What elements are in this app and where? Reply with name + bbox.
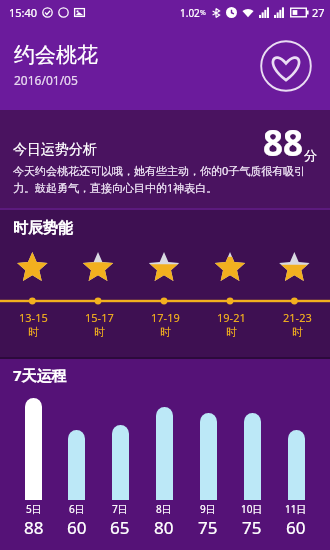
staticText: 7日 bbox=[112, 502, 128, 516]
staticText: 时 bbox=[226, 325, 237, 339]
staticText: 时 bbox=[94, 325, 105, 339]
staticText: 15:40 bbox=[9, 5, 38, 20]
staticText: 1.02 bbox=[180, 6, 200, 20]
button[interactable]: 今日运势分析 bbox=[0, 110, 330, 208]
staticText: 9日 bbox=[200, 502, 216, 516]
staticText: 2016/01/05 bbox=[14, 72, 78, 88]
staticText: 19-21 bbox=[217, 310, 246, 325]
staticText: 80 bbox=[154, 516, 174, 539]
staticText: 7天运程 bbox=[13, 365, 67, 385]
staticText: 60 bbox=[286, 516, 306, 539]
button[interactable]: 时辰势能 bbox=[0, 210, 330, 357]
staticText: 17-19 bbox=[151, 310, 180, 325]
staticText: 13-15 bbox=[19, 310, 48, 325]
staticText: % bbox=[200, 8, 206, 18]
staticText: 60 bbox=[67, 516, 87, 539]
staticText: 今日运势分析 bbox=[13, 141, 97, 159]
staticText: 约会桃花 bbox=[14, 42, 98, 68]
staticText: 88 bbox=[24, 516, 44, 539]
staticText: 10日 bbox=[241, 502, 263, 516]
staticText: 今天约会桃花还可以哦，她有些主动，你的0子气质很有吸引力。鼓起勇气，直接向心目中… bbox=[13, 163, 317, 196]
staticText: 21-23 bbox=[283, 310, 312, 325]
staticText: 时 bbox=[28, 325, 39, 339]
staticText: 27 bbox=[312, 5, 325, 20]
staticText: 6日 bbox=[69, 502, 85, 516]
staticText: 11日 bbox=[285, 502, 307, 516]
staticText: 分 bbox=[304, 147, 317, 163]
staticText: 15-17 bbox=[85, 310, 114, 325]
staticText: 时 bbox=[292, 325, 303, 339]
staticText: 时 bbox=[160, 325, 171, 339]
staticText: 75 bbox=[198, 516, 218, 539]
staticText: 88 bbox=[263, 119, 304, 167]
staticText: 65 bbox=[110, 516, 130, 539]
button[interactable]: 7天运程 bbox=[0, 359, 330, 550]
button[interactable]: Favorite bbox=[260, 40, 312, 92]
staticText: 75 bbox=[242, 516, 262, 539]
staticText: 5日 bbox=[26, 502, 42, 516]
staticText: 8日 bbox=[156, 502, 172, 516]
staticText: 时辰势能 bbox=[13, 219, 73, 238]
